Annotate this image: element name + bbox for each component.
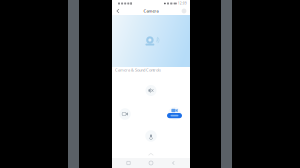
- button[interactable]: Video: [119, 108, 131, 120]
- staticText: Camera: [143, 8, 158, 14]
- button[interactable]: Microphone: [145, 130, 157, 142]
- button[interactable]: Back: [113, 7, 123, 15]
- button[interactable]: Mute: [145, 85, 156, 96]
- staticText: 12:09: [178, 2, 187, 5]
- button[interactable]: Settings: [179, 7, 189, 15]
- button[interactable]: Home: [145, 158, 157, 168]
- button[interactable]: Recents: [167, 158, 179, 168]
- button[interactable]: Record video: [166, 107, 182, 120]
- button[interactable]: Back: [122, 158, 134, 168]
- staticText: Camera & Sound Controls: [115, 67, 161, 73]
